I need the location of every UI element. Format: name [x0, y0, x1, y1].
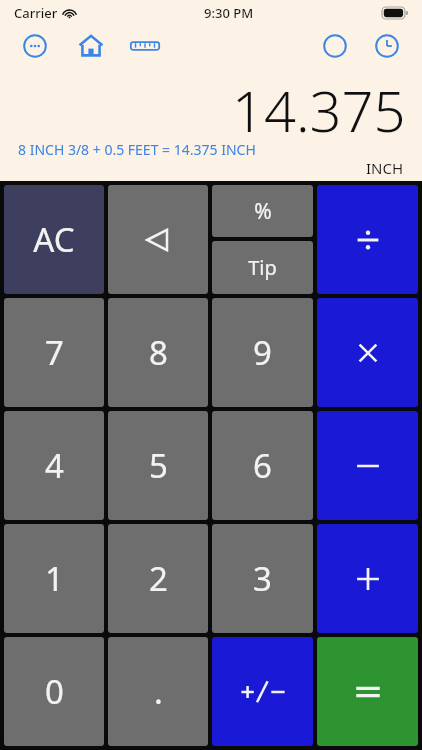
staticText: 2 — [149, 556, 168, 601]
button[interactable]: Backspace — [108, 185, 208, 294]
button[interactable]: 5 — [108, 411, 208, 520]
staticText: . — [154, 669, 163, 714]
staticText: 8 — [149, 330, 168, 375]
button[interactable]: Home — [74, 29, 108, 63]
staticText: 0 — [45, 669, 64, 714]
button[interactable]: History — [370, 29, 404, 63]
button[interactable]: Tip — [212, 241, 313, 294]
button[interactable]: . — [108, 637, 208, 746]
button[interactable]: Help — [318, 29, 352, 63]
button[interactable]: Subtract — [317, 411, 418, 520]
staticText: 9:30 PM — [204, 4, 254, 22]
button[interactable]: Add — [317, 524, 418, 633]
staticText: 1 — [45, 556, 64, 601]
staticText: AC — [33, 217, 75, 262]
button[interactable]: More options — [18, 29, 52, 63]
button[interactable]: Plus or minus — [212, 637, 313, 746]
button[interactable]: Units — [128, 29, 162, 63]
staticText: 14.375 — [232, 72, 406, 148]
button[interactable]: 4 — [4, 411, 104, 520]
button[interactable]: 2 — [108, 524, 208, 633]
button[interactable]: Divide — [317, 185, 418, 294]
button[interactable]: 8 — [108, 298, 208, 407]
staticText: Tip — [248, 254, 277, 281]
button[interactable]: AC — [4, 185, 104, 294]
staticText: 8 INCH 3/8 + 0.5 FEET = 14.375 INCH — [18, 140, 256, 159]
staticText: 6 — [253, 443, 272, 488]
staticText: 7 — [45, 330, 64, 375]
staticText: 4 — [45, 443, 64, 488]
staticText: 9 — [253, 330, 272, 375]
button[interactable]: Multiply — [317, 298, 418, 407]
staticText: Carrier — [14, 4, 58, 22]
button[interactable]: 3 — [212, 524, 313, 633]
button[interactable]: 6 — [212, 411, 313, 520]
staticText: % — [254, 197, 272, 226]
button[interactable]: 7 — [4, 298, 104, 407]
button[interactable]: Equals — [317, 637, 418, 746]
button[interactable]: 1 — [4, 524, 104, 633]
staticText: 3 — [253, 556, 272, 601]
staticText: INCH — [366, 158, 404, 178]
button[interactable]: 0 — [4, 637, 104, 746]
button[interactable]: 9 — [212, 298, 313, 407]
button[interactable]: % — [212, 185, 313, 237]
staticText: 5 — [149, 443, 168, 488]
